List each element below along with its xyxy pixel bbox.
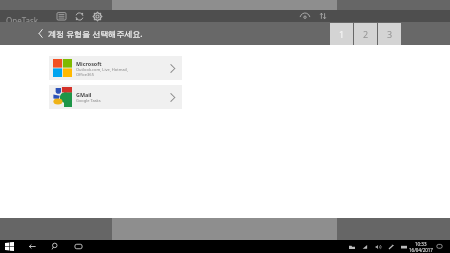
button[interactable]: Sync xyxy=(70,10,88,22)
staticText: Outlook.com, Live, Hotmail, xyxy=(76,67,128,72)
button[interactable]: Microsoft xyxy=(49,56,182,80)
staticText: OneTask xyxy=(6,15,39,26)
staticText: 계정 유형을 선택해주세요. xyxy=(48,28,143,39)
button[interactable]: Data transfer xyxy=(317,10,329,22)
button[interactable]: GMail xyxy=(49,85,182,109)
staticText: 3 xyxy=(387,28,393,40)
button[interactable]: Wi-Fi xyxy=(299,10,311,22)
staticText: 2 xyxy=(363,28,369,40)
button[interactable]: Action center xyxy=(434,241,445,252)
staticText: Office365 xyxy=(76,72,94,77)
staticText: 10:33 xyxy=(415,241,427,247)
staticText: 1 xyxy=(339,28,345,40)
staticText: Microsoft xyxy=(76,60,102,67)
button[interactable]: Clock xyxy=(409,241,433,253)
staticText: GMail xyxy=(76,91,92,98)
button[interactable]: 1 xyxy=(330,23,353,45)
button[interactable]: 2 xyxy=(354,23,377,45)
staticText: 16/04/2017 xyxy=(409,247,433,253)
staticText: Google Tasks xyxy=(76,98,101,103)
button[interactable]: 3 xyxy=(378,23,401,45)
button[interactable]: Settings xyxy=(88,10,106,22)
button[interactable]: Tasks xyxy=(52,10,70,22)
